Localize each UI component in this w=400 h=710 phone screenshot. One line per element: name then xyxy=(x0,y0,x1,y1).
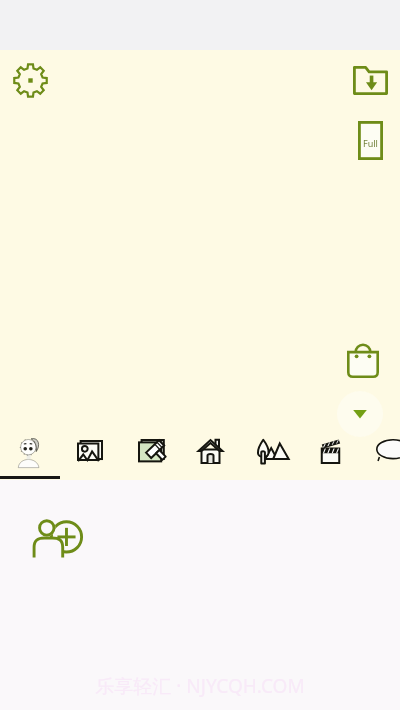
button[interactable]: Add person xyxy=(26,512,92,564)
button[interactable]: Chat xyxy=(360,430,400,480)
button[interactable]: Profile xyxy=(0,430,60,480)
button[interactable]: Shop xyxy=(344,340,382,380)
button[interactable]: Full xyxy=(358,121,383,160)
button[interactable]: Settings xyxy=(9,58,53,102)
staticText: 乐享轻汇 · NJYCQH.COM xyxy=(0,673,400,699)
button[interactable]: Edit xyxy=(120,430,180,480)
staticText: Full xyxy=(363,137,378,149)
button[interactable]: Photos xyxy=(60,430,120,480)
button[interactable]: Download xyxy=(348,61,392,99)
button[interactable]: Home xyxy=(180,430,240,480)
button[interactable]: Video xyxy=(300,430,360,480)
button[interactable]: Expand xyxy=(337,391,383,437)
button[interactable]: Nature xyxy=(240,430,300,480)
